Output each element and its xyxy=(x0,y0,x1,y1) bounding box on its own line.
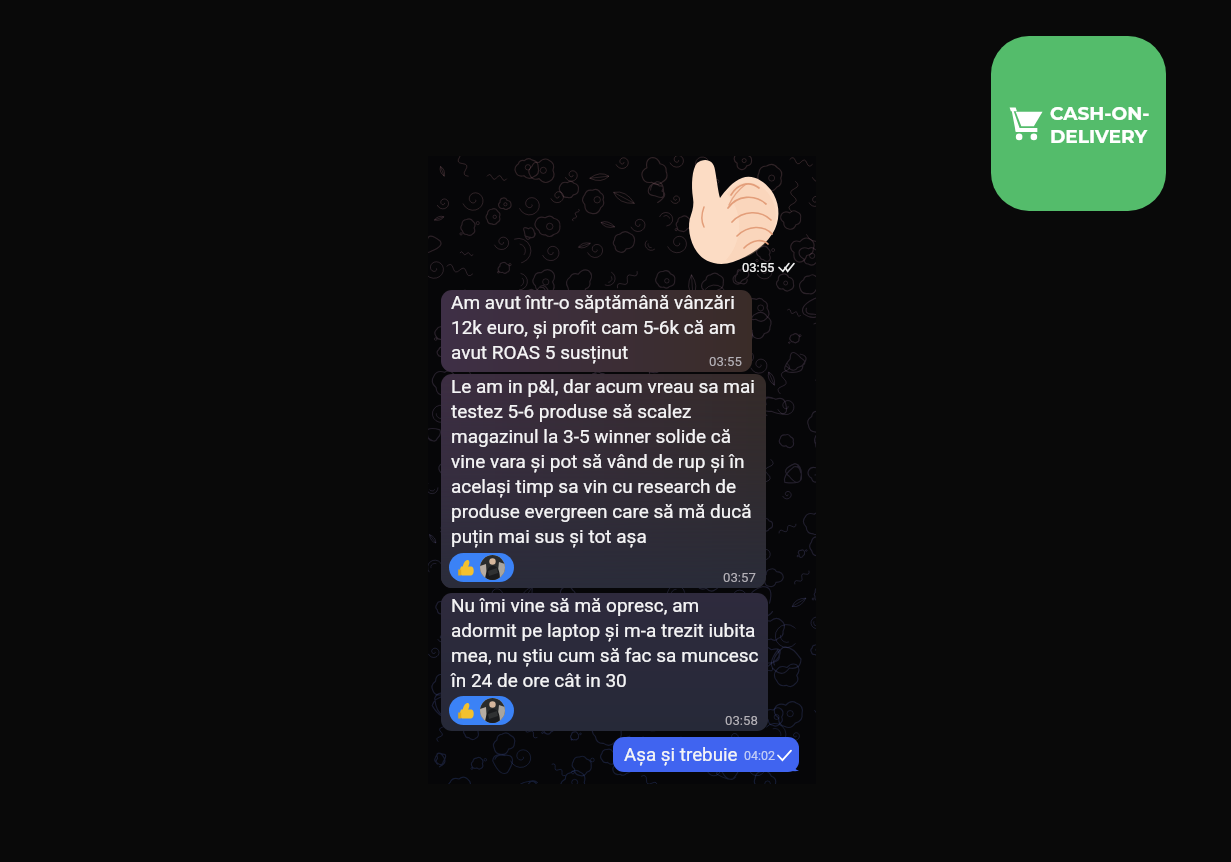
button[interactable]: Reactions xyxy=(449,553,514,582)
staticText: DELIVERY xyxy=(1050,125,1148,148)
button[interactable]: Reactions xyxy=(449,696,514,725)
button[interactable]: Cash on Delivery logo xyxy=(991,36,1166,211)
staticText: 03:55 xyxy=(709,354,742,369)
staticText: Așa și trebuie xyxy=(624,744,738,766)
staticText: 03:57 xyxy=(723,570,756,585)
staticText: 03:55 xyxy=(742,260,775,275)
button[interactable]: Nu îmi vine să mă opresc, am adormit pe … xyxy=(441,593,768,731)
staticText: 03:58 xyxy=(725,713,758,728)
staticText: Nu îmi vine să mă opresc, am adormit pe … xyxy=(451,594,759,691)
staticText: Am avut într-o săptămână vânzări 12k eur… xyxy=(451,291,736,363)
button[interactable]: Am avut într-o săptămână vânzări 12k eur… xyxy=(441,290,752,372)
staticText: CASH-ON- xyxy=(1050,102,1150,125)
button[interactable]: Așa și trebuie xyxy=(613,737,799,772)
staticText: 04:02 xyxy=(744,748,776,763)
button[interactable]: Le am in p&l, dar acum vreau sa mai test… xyxy=(441,374,766,588)
staticText: Le am in p&l, dar acum vreau sa mai test… xyxy=(451,375,755,547)
